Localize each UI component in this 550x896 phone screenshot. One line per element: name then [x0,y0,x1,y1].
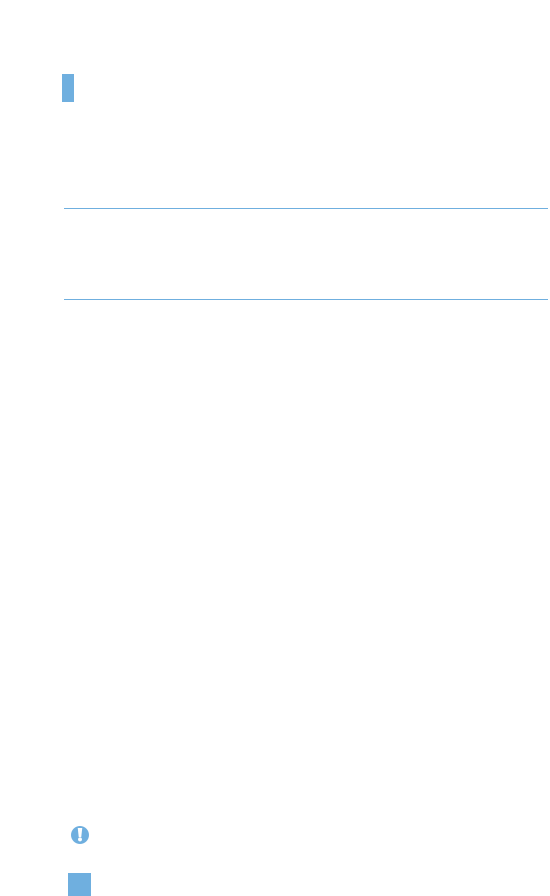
button[interactable]: First item [64,102,548,209]
button[interactable]: Second item [64,209,548,300]
